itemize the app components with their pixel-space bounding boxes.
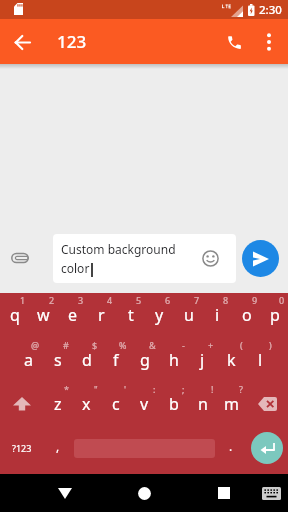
button[interactable] [124,474,164,512]
staticText: q [10,304,20,326]
button[interactable] [251,432,283,464]
staticText: 2 [49,294,55,306]
staticText: l [258,349,263,371]
button[interactable]: ) [246,338,275,382]
button[interactable] [220,28,248,56]
staticText: f [113,349,119,371]
staticText: . [229,438,233,454]
staticText: ( [240,339,243,351]
button[interactable]: @ [14,338,43,382]
staticText: z [54,393,62,415]
button[interactable] [72,426,216,470]
button[interactable]: # [43,338,72,382]
staticText: # [63,339,69,351]
button[interactable]: * [43,382,72,426]
staticText: ?123 [12,442,32,454]
staticText: t [128,304,134,326]
staticText: 9 [252,294,258,306]
staticText: @ [31,339,40,351]
button[interactable] [242,240,279,277]
staticText: e [68,304,78,326]
staticText: a [24,349,33,371]
staticText: % [119,339,127,351]
staticText: 6 [165,294,171,306]
staticText: 4 [107,294,113,306]
button[interactable]: 6 [145,293,174,338]
staticText: - [182,339,185,351]
button[interactable]: % [101,338,130,382]
staticText: s [54,349,62,371]
button[interactable] [246,382,288,426]
staticText: $ [92,339,98,351]
button[interactable]: ! [188,382,217,426]
button[interactable]: & [130,338,159,382]
button[interactable]: 1 [0,293,29,338]
staticText: m [224,393,239,415]
staticText: b [169,393,179,415]
staticText: p [270,304,280,326]
staticText: c [112,393,120,415]
staticText: 3 [78,294,84,306]
staticText: 0 [279,294,285,306]
staticText: g [140,349,150,371]
staticText: v [140,393,149,415]
button[interactable]: - [159,338,188,382]
button[interactable]: 0 [261,293,288,338]
staticText: + [208,339,214,351]
staticText: 7 [194,294,200,306]
button[interactable] [45,474,85,512]
staticText: u [184,304,194,326]
button[interactable]: 2 [29,293,58,338]
button[interactable]: Custom background color [53,234,236,283]
staticText: 5 [136,294,142,306]
staticText: ) [269,339,272,351]
staticText: h [169,349,179,371]
staticText: n [198,393,208,415]
button[interactable]: 4 [87,293,116,338]
button[interactable]: : [130,382,159,426]
button[interactable]: $ [72,338,101,382]
button[interactable]: 3 [58,293,87,338]
button[interactable] [255,28,283,56]
staticText: 2:30 [259,2,282,18]
staticText: y [155,304,164,326]
button[interactable]: + [188,338,217,382]
button[interactable]: 7 [174,293,203,338]
staticText: ; [182,383,185,395]
staticText: & [149,339,156,351]
staticText: w [37,304,50,326]
button[interactable]: . [216,426,245,470]
button[interactable]: , [43,426,72,470]
button[interactable]: 5 [116,293,145,338]
staticText: r [98,304,105,326]
button[interactable]: 8 [203,293,232,338]
staticText: Custom background color [61,241,176,276]
button[interactable] [256,474,286,512]
staticText: i [215,304,220,326]
staticText: " [94,383,98,395]
button[interactable]: ? [217,382,246,426]
button[interactable]: ?123 [0,426,43,470]
button[interactable] [7,27,37,57]
button[interactable]: ' [101,382,130,426]
staticText: ! [211,383,214,395]
button[interactable] [204,474,244,512]
staticText: , [56,438,60,454]
staticText: ? [239,383,243,395]
staticText: k [227,349,236,371]
staticText: * [64,383,69,395]
button[interactable]: ( [217,338,246,382]
staticText: o [242,304,252,326]
staticText: 123 [57,30,87,53]
staticText: d [82,349,92,371]
button[interactable]: ; [159,382,188,426]
staticText: : [153,383,156,395]
staticText: 1 [20,294,26,306]
button[interactable]: 9 [232,293,261,338]
button[interactable] [0,382,43,426]
staticText: j [200,349,205,371]
button[interactable]: " [72,382,101,426]
staticText: x [82,393,91,415]
staticText: ' [124,383,127,395]
staticText: 8 [223,294,229,306]
